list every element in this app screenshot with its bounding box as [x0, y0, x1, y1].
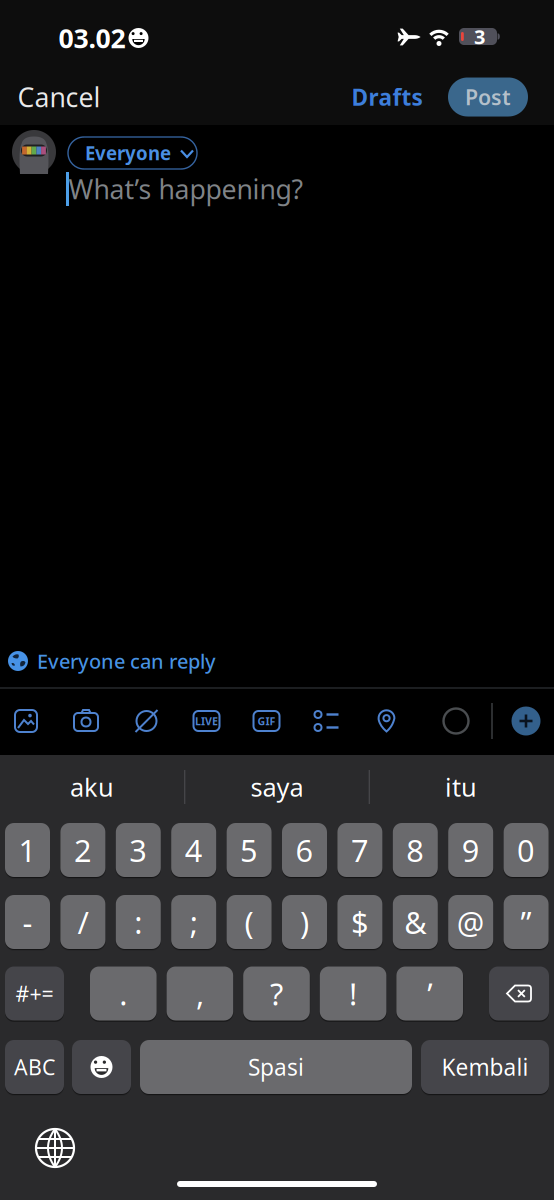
staticText: ABC: [14, 1053, 55, 1081]
staticText: .: [119, 973, 127, 1014]
button[interactable]: Add another post: [511, 706, 540, 735]
button[interactable]: saya: [187, 763, 367, 811]
staticText: Everyone can reply: [37, 648, 216, 674]
staticText: Spasi: [248, 1052, 304, 1082]
button[interactable]: ;: [171, 895, 216, 949]
button[interactable]: 7: [337, 823, 382, 877]
button[interactable]: $: [337, 895, 382, 949]
staticText: 0: [517, 830, 535, 870]
staticText: itu: [445, 770, 477, 804]
button[interactable]: Drafts: [351, 82, 422, 112]
staticText: Drafts: [351, 82, 422, 112]
button[interactable]: 5: [227, 823, 272, 877]
button[interactable]: Camera: [73, 709, 99, 733]
button[interactable]: ): [282, 895, 327, 949]
staticText: saya: [250, 770, 303, 804]
button[interactable]: &: [393, 895, 438, 949]
button[interactable]: -: [5, 895, 50, 949]
staticText: GIF: [257, 714, 275, 728]
staticText: 3: [129, 830, 147, 870]
button[interactable]: Next keyboard: [35, 1128, 75, 1168]
button[interactable]: ’: [396, 966, 463, 1020]
button[interactable]: 6: [282, 823, 327, 877]
button[interactable]: Everyone can reply: [8, 648, 216, 674]
staticText: /: [77, 902, 88, 942]
button[interactable]: Delete: [489, 966, 549, 1020]
button[interactable]: Everyone: [68, 137, 197, 169]
staticText: 6: [295, 830, 313, 870]
button[interactable]: Tag location: [374, 708, 398, 734]
button[interactable]: Spasi: [140, 1040, 412, 1094]
button[interactable]: /: [60, 895, 105, 949]
staticText: 8: [406, 830, 424, 870]
staticText: Everyone: [85, 141, 171, 165]
button[interactable]: ,: [167, 966, 233, 1020]
staticText: ): [300, 902, 309, 942]
button[interactable]: ABC: [5, 1040, 64, 1094]
staticText: $: [351, 902, 369, 942]
button[interactable]: 4: [171, 823, 216, 877]
button[interactable]: (: [227, 895, 272, 949]
button[interactable]: ”: [504, 895, 549, 949]
button[interactable]: ?: [243, 966, 310, 1020]
button[interactable]: 9: [448, 823, 493, 877]
staticText: 9: [462, 830, 480, 870]
staticText: -: [22, 902, 32, 942]
button[interactable]: Add GIF: [253, 710, 279, 732]
button[interactable]: 2: [60, 823, 105, 877]
button[interactable]: !: [320, 966, 386, 1020]
staticText: ;: [190, 902, 198, 942]
staticText: ’: [427, 973, 432, 1014]
button[interactable]: 1: [5, 823, 50, 877]
staticText: &: [404, 902, 426, 942]
button[interactable]: :: [116, 895, 161, 949]
staticText: Kembali: [441, 1052, 528, 1082]
button[interactable]: #+=: [5, 966, 64, 1020]
button[interactable]: Go live: [193, 710, 219, 732]
button[interactable]: 0: [504, 823, 549, 877]
staticText: @: [457, 902, 485, 942]
staticText: 7: [351, 830, 369, 870]
button[interactable]: Cancel: [17, 79, 100, 115]
button[interactable]: Add photo: [14, 709, 38, 733]
staticText: !: [349, 973, 357, 1014]
button[interactable]: .: [90, 966, 157, 1020]
staticText: LIVE: [195, 714, 218, 728]
staticText: 4: [185, 830, 203, 870]
button[interactable]: aku: [2, 763, 182, 811]
staticText: aku: [70, 770, 114, 804]
staticText: Post: [465, 83, 511, 111]
button[interactable]: Emoji: [72, 1040, 131, 1094]
staticText: ,: [196, 973, 204, 1014]
staticText: :: [134, 902, 142, 942]
staticText: What’s happening?: [68, 171, 303, 207]
staticText: 5: [240, 830, 258, 870]
staticText: ?: [270, 973, 283, 1014]
staticText: 1: [18, 830, 36, 870]
button[interactable]: 8: [393, 823, 438, 877]
button[interactable]: 3: [116, 823, 161, 877]
staticText: #+=: [15, 979, 53, 1008]
staticText: 2: [74, 830, 92, 870]
staticText: (: [245, 902, 254, 942]
button[interactable]: Post: [448, 77, 528, 116]
button[interactable]: Grok: [133, 708, 159, 734]
staticText: ”: [521, 902, 532, 942]
button[interactable]: @: [448, 895, 493, 949]
button[interactable]: Add poll: [313, 708, 339, 734]
staticText: 3: [474, 23, 485, 50]
staticText: Cancel: [17, 79, 100, 115]
staticText: 03.02: [58, 20, 125, 56]
button[interactable]: itu: [371, 763, 551, 811]
button[interactable]: Kembali: [421, 1040, 549, 1094]
